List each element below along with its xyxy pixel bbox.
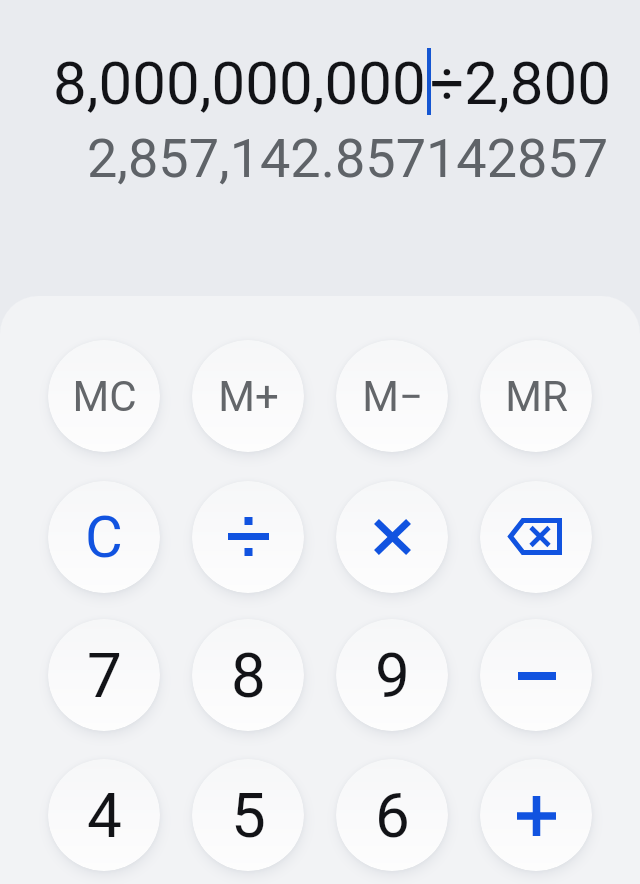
button[interactable]: Backspace: [480, 481, 592, 593]
staticText: ÷2,800: [430, 48, 611, 118]
staticText: 4: [87, 779, 122, 852]
button[interactable]: 4: [48, 759, 160, 871]
staticText: 2,857,142.857142857: [87, 127, 609, 190]
staticText: 5: [231, 779, 266, 852]
staticText: MR: [505, 372, 568, 421]
button[interactable]: Plus: [480, 759, 592, 871]
button[interactable]: 6: [336, 759, 448, 871]
staticText: 6: [375, 779, 410, 852]
button[interactable]: 9: [336, 619, 448, 731]
button[interactable]: Clear: [48, 481, 160, 593]
staticText: 8: [231, 639, 266, 712]
button[interactable]: 5: [192, 759, 304, 871]
button[interactable]: 7: [48, 619, 160, 731]
button[interactable]: Memory add: [192, 340, 304, 452]
button[interactable]: Minus: [480, 619, 592, 731]
staticText: 9: [375, 639, 410, 712]
button[interactable]: Memory subtract: [336, 340, 448, 452]
staticText: C: [85, 503, 123, 571]
button[interactable]: Multiply: [336, 481, 448, 593]
staticText: M+: [218, 372, 279, 421]
staticText: MC: [72, 372, 137, 421]
staticText: 7: [87, 639, 122, 712]
button[interactable]: 8: [192, 619, 304, 731]
button[interactable]: Memory clear: [48, 340, 160, 452]
staticText: 8,000,000,000: [53, 48, 426, 118]
button[interactable]: Memory recall: [480, 340, 592, 452]
button[interactable]: Divide: [192, 481, 304, 593]
staticText: M−: [362, 372, 423, 421]
